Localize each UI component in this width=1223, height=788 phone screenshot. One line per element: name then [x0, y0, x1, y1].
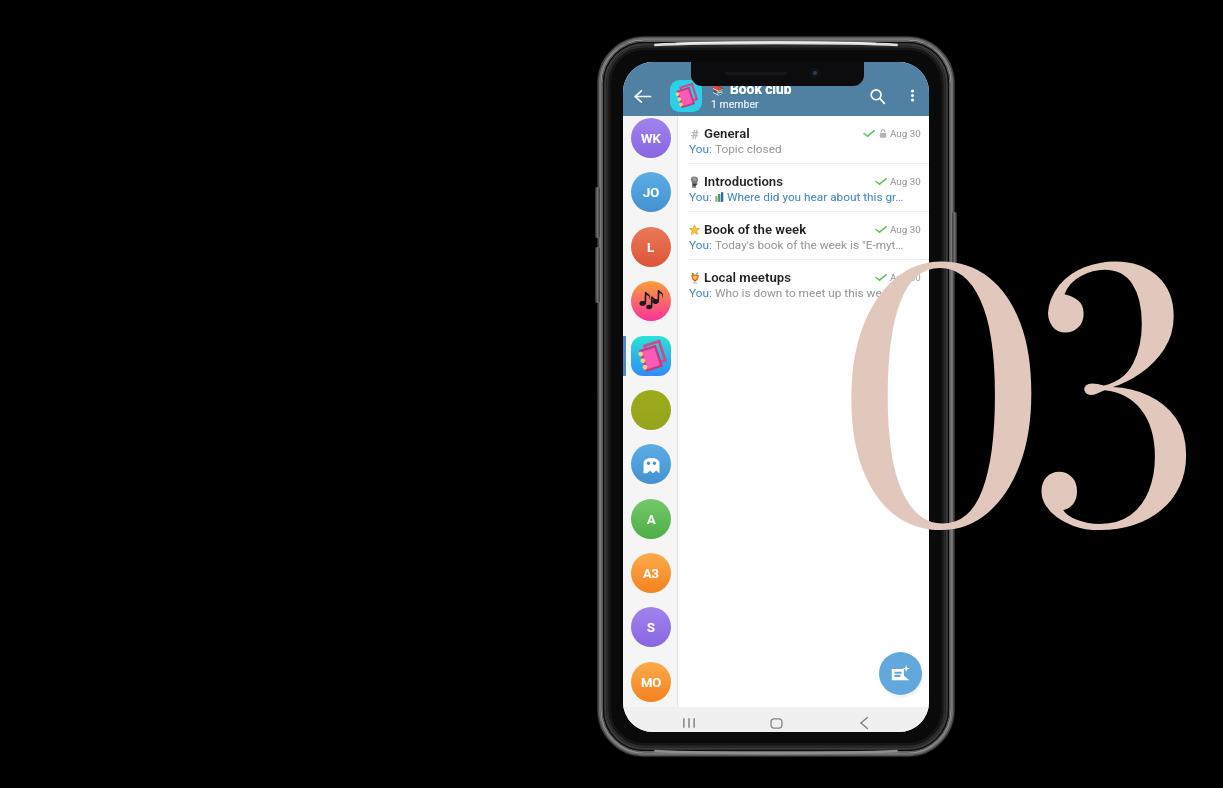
- button[interactable]: [623, 274, 678, 328]
- staticText: You:: [689, 142, 712, 156]
- button[interactable]: More options: [898, 81, 926, 109]
- staticText: 1 member: [711, 98, 759, 110]
- button[interactable]: [623, 383, 678, 437]
- staticText: MO: [641, 675, 662, 690]
- staticText: A3: [643, 566, 660, 581]
- staticText: 0: [831, 130, 1052, 617]
- staticText: Where did you hear about this gr…: [727, 190, 904, 204]
- button[interactable]: Group photo: [670, 80, 702, 112]
- button[interactable]: Local meetups: [678, 260, 929, 307]
- button[interactable]: A: [623, 492, 678, 546]
- button[interactable]: [623, 437, 678, 491]
- button[interactable]: Book of the week: [678, 212, 929, 259]
- staticText: You:: [689, 238, 712, 252]
- button[interactable]: Back: [843, 711, 885, 732]
- button[interactable]: L: [623, 220, 678, 274]
- staticText: General: [704, 126, 750, 141]
- staticText: Introductions: [704, 174, 784, 189]
- button[interactable]: New topic: [879, 652, 922, 695]
- staticText: Book club: [730, 81, 792, 97]
- button[interactable]: WK: [623, 111, 678, 165]
- staticText: S: [647, 620, 655, 635]
- staticText: Aug 30: [890, 272, 921, 283]
- button[interactable]: Introductions: [678, 164, 929, 211]
- staticText: Aug 30: [890, 176, 921, 187]
- staticText: WK: [641, 131, 661, 146]
- button[interactable]: JO: [623, 165, 678, 219]
- staticText: You:: [689, 190, 712, 204]
- button[interactable]: Search: [862, 81, 892, 111]
- staticText: Aug 30: [890, 224, 921, 235]
- staticText: 📚: [712, 85, 725, 97]
- staticText: JO: [643, 185, 660, 200]
- staticText: 3: [1027, 130, 1204, 617]
- button[interactable]: #: [678, 116, 929, 163]
- button[interactable]: Home: [755, 711, 797, 732]
- staticText: You:: [689, 286, 712, 300]
- staticText: Local meetups: [704, 270, 791, 285]
- button[interactable]: Back: [627, 81, 657, 111]
- button[interactable]: Recent apps: [668, 711, 710, 732]
- staticText: Today's book of the week is "E-myt…: [715, 238, 904, 252]
- button[interactable]: A3: [623, 546, 678, 600]
- staticText: Who is down to meet up this week?: [715, 286, 900, 300]
- staticText: L: [647, 240, 655, 255]
- button[interactable]: [623, 329, 678, 383]
- button[interactable]: MO: [623, 655, 678, 709]
- staticText: #: [691, 127, 699, 140]
- staticText: Book of the week: [704, 222, 807, 237]
- staticText: Topic closed: [715, 142, 782, 156]
- button[interactable]: S: [623, 600, 678, 654]
- staticText: Aug 30: [890, 128, 921, 139]
- staticText: A: [647, 512, 656, 527]
